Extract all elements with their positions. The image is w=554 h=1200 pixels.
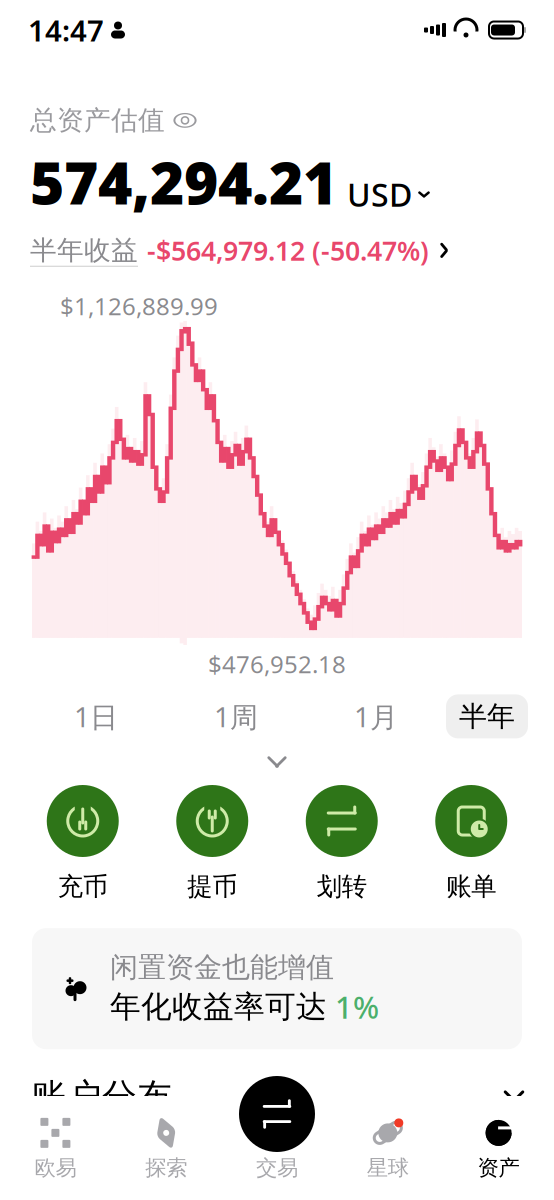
- staticText: 充币: [58, 871, 108, 902]
- button[interactable]: 1月: [306, 688, 446, 745]
- button[interactable]: 交易: [222, 1105, 332, 1191]
- button[interactable]: 账单: [416, 785, 526, 902]
- staticText: 探索: [145, 1155, 187, 1181]
- button[interactable]: 划转: [287, 785, 397, 902]
- button[interactable]: 星球: [332, 1105, 443, 1191]
- staticText: 提币: [187, 871, 237, 902]
- button[interactable]: 收起: [247, 745, 307, 779]
- button[interactable]: 574,294.21: [30, 143, 430, 221]
- staticText: 1月: [354, 698, 398, 735]
- staticText: 半年收益: [30, 234, 138, 267]
- staticText: 交易: [256, 1155, 298, 1181]
- staticText: 1周: [214, 698, 258, 735]
- button[interactable]: 1周: [166, 688, 306, 745]
- button[interactable]: 总资产估值: [30, 104, 196, 137]
- staticText: 闲置资金也能增值: [110, 950, 334, 984]
- button[interactable]: 交易: [239, 1076, 315, 1152]
- staticText: 半年: [459, 699, 515, 734]
- button[interactable]: 欧易: [0, 1105, 111, 1191]
- button[interactable]: 账户分布: [0, 1049, 554, 1132]
- button[interactable]: 1日: [26, 688, 166, 745]
- button[interactable]: 半年: [446, 694, 528, 738]
- staticText: 账单: [446, 871, 496, 902]
- button[interactable]: 探索: [111, 1105, 222, 1191]
- button[interactable]: 闲置资金也能增值: [32, 928, 522, 1049]
- staticText: 年化收益率可达: [110, 988, 327, 1026]
- staticText: 账户分布: [32, 1075, 172, 1118]
- button[interactable]: 资产: [443, 1105, 554, 1191]
- button[interactable]: 充币: [28, 785, 138, 902]
- staticText: 星球: [367, 1155, 409, 1181]
- staticText: 总资产估值: [30, 104, 165, 137]
- staticText: 欧易: [34, 1155, 76, 1181]
- staticText: 1%: [335, 986, 379, 1027]
- staticText: 14:47: [28, 10, 104, 49]
- button[interactable]: 半年收益: [30, 233, 450, 268]
- staticText: 574,294.21: [30, 143, 337, 221]
- staticText: $476,952.18: [208, 648, 346, 680]
- staticText: USD: [347, 173, 412, 216]
- button[interactable]: 提币: [157, 785, 267, 902]
- staticText: -$564,979.12 (-50.47%): [147, 233, 429, 268]
- staticText: 资产: [478, 1155, 520, 1181]
- staticText: 划转: [317, 871, 367, 902]
- staticText: 1日: [74, 698, 118, 735]
- staticText: $1,126,889.99: [60, 290, 218, 322]
